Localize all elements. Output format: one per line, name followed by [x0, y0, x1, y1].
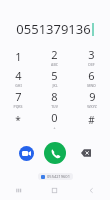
button[interactable]: *: [0, 109, 36, 130]
staticText: 8: [51, 89, 58, 104]
staticText: PQRS: [13, 104, 23, 109]
staticText: 4: [15, 68, 22, 83]
staticText: 0: [51, 110, 58, 125]
staticText: MNO: [87, 83, 96, 88]
button[interactable]: Back: [73, 184, 110, 197]
staticText: #: [88, 113, 95, 127]
button[interactable]: 8: [36, 88, 73, 109]
staticText: 1: [15, 49, 22, 64]
button[interactable]: Recents: [0, 184, 36, 197]
staticText: WXYZ: [87, 104, 97, 109]
staticText: ABC: [51, 62, 58, 67]
button[interactable]: 2: [36, 46, 73, 67]
staticText: TUV: [51, 104, 58, 109]
staticText: 0551379136: [16, 20, 91, 38]
button[interactable]: Video call: [19, 146, 34, 161]
staticText: JKL: [52, 83, 58, 88]
staticText: GHI: [15, 83, 22, 88]
staticText: 3: [88, 47, 95, 62]
staticText: DEF: [88, 62, 95, 67]
button[interactable]: #: [73, 109, 110, 130]
staticText: +: [53, 125, 56, 130]
button[interactable]: 7: [0, 88, 36, 109]
button[interactable]: 0554219601: [38, 173, 73, 180]
staticText: 7: [15, 89, 22, 104]
staticText: 9: [89, 89, 96, 104]
button[interactable]: 0: [36, 109, 73, 130]
button[interactable]: Backspace: [78, 145, 94, 161]
button[interactable]: Home: [36, 184, 73, 197]
button[interactable]: Call: [44, 142, 66, 164]
staticText: *: [15, 113, 21, 127]
button[interactable]: 6: [73, 67, 110, 88]
staticText: 5: [51, 68, 58, 83]
button[interactable]: 9: [73, 88, 110, 109]
staticText: 2: [51, 47, 58, 62]
button[interactable]: 1: [0, 46, 36, 67]
button[interactable]: 4: [0, 67, 36, 88]
button[interactable]: 5: [36, 67, 73, 88]
staticText: 0554219601: [47, 174, 70, 179]
staticText: 6: [88, 68, 95, 83]
button[interactable]: 3: [73, 46, 110, 67]
